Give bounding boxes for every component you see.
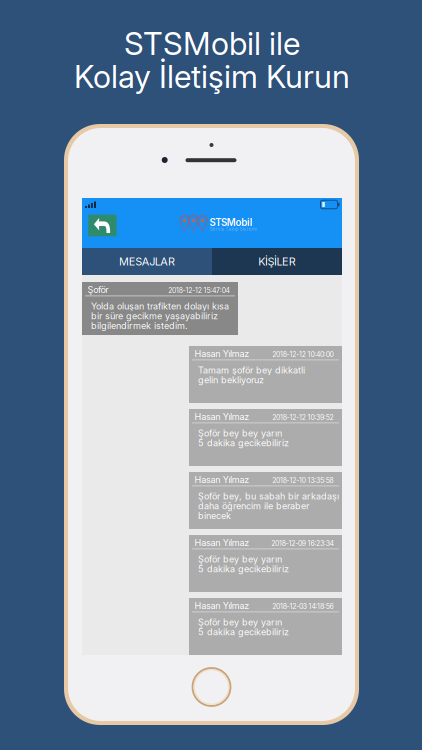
staticText: Servis Takip Sistemi xyxy=(209,226,256,232)
staticText: Şoför bey, bu sabah bir arkadaşı xyxy=(198,491,339,502)
staticText: 5 dakika gecikebiliriz xyxy=(198,626,289,637)
staticText: Şoför bey bey yarın xyxy=(198,428,282,439)
staticText: Hasan Yılmaz xyxy=(194,474,249,485)
staticText: Yolda oluşan trafikten dolayı kısa xyxy=(91,301,229,312)
staticText: 2018-12-09 16:23:34 xyxy=(271,539,333,548)
staticText: MESAJLAR xyxy=(119,255,175,268)
staticText: Hasan Yılmaz xyxy=(194,411,249,422)
staticText: 5 dakika gecikebiliriz xyxy=(198,563,289,574)
button[interactable]: Back xyxy=(88,215,117,236)
staticText: binecek xyxy=(198,510,231,521)
staticText: Kolay İletişim Kurun xyxy=(74,57,350,95)
staticText: 2018-12-12 15:47:04 xyxy=(168,286,229,295)
staticText: KİŞİLER xyxy=(258,255,296,268)
staticText: STSMobil ile xyxy=(124,24,300,62)
staticText: bilgilendirmek istedim. xyxy=(91,320,188,331)
staticText: STSMobil xyxy=(209,216,253,228)
staticText: 2018-12-12 10:40:00 xyxy=(272,350,333,359)
staticText: 2018-12-03 14:18:56 xyxy=(272,602,333,611)
staticText: Hasan Yılmaz xyxy=(194,537,249,548)
staticText: Şoför bey bey yarın xyxy=(198,554,282,565)
staticText: 5 dakika gecikebiliriz xyxy=(198,437,289,448)
button[interactable]: KİŞİLER xyxy=(212,248,342,275)
staticText: 2018-12-12 10:39:52 xyxy=(272,413,333,422)
staticText: gelin bekliyoruz xyxy=(198,374,264,385)
staticText: Şoför bey bey yarın xyxy=(198,617,282,628)
staticText: Tamam şoför bey dikkatli xyxy=(198,365,305,376)
staticText: daha öğrencim ile beraber xyxy=(198,500,309,511)
staticText: Şoför xyxy=(87,284,108,295)
staticText: bir süre gecikme yaşayabiliriz xyxy=(91,310,218,321)
staticText: 2018-12-10 13:35:58 xyxy=(272,476,333,485)
staticText: Hasan Yılmaz xyxy=(194,600,249,611)
button[interactable]: MESAJLAR xyxy=(82,248,212,275)
staticText: Hasan Yılmaz xyxy=(194,348,249,359)
